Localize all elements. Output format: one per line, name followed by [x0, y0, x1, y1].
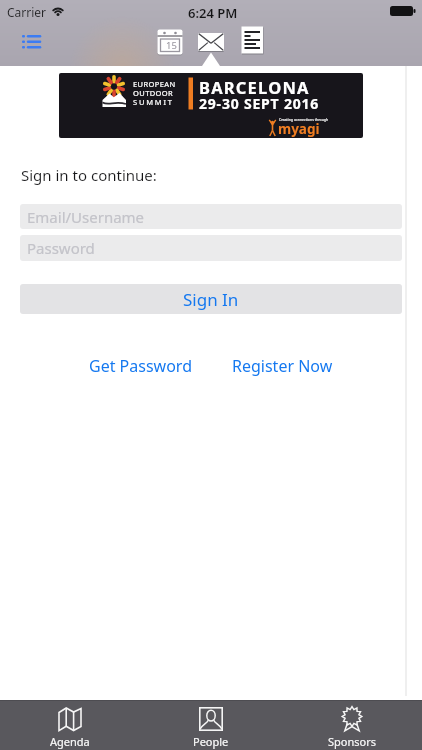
staticText: Sign In — [183, 288, 239, 311]
staticText: People — [193, 734, 229, 749]
staticText: OUTDOOR — [133, 88, 174, 98]
button[interactable]: Agenda — [0, 700, 140, 750]
staticText: Email/Username — [27, 207, 145, 227]
staticText: 15 — [166, 39, 177, 52]
staticText: 6:24 PM — [188, 4, 238, 22]
staticText: Sign in to continue: — [21, 165, 157, 185]
button[interactable]: Password — [20, 235, 402, 261]
staticText: Get Password — [89, 355, 192, 377]
button[interactable]: People — [140, 700, 281, 750]
button[interactable] — [241, 26, 264, 55]
staticText: Creating connections through — [279, 117, 329, 122]
button[interactable]: Sponsors — [281, 700, 422, 750]
staticText: Agenda — [50, 734, 90, 749]
staticText: SUMMIT — [133, 97, 174, 107]
staticText: Register Now — [232, 355, 333, 377]
button[interactable]: Register Now — [222, 355, 342, 377]
staticText: Sponsors — [328, 734, 376, 749]
button[interactable]: EUROPEAN — [59, 73, 363, 138]
button[interactable]: Sign In — [20, 284, 402, 314]
staticText: myagi — [278, 120, 320, 138]
staticText: Carrier — [7, 4, 47, 20]
staticText: Password — [27, 238, 95, 258]
staticText: 29-30 SEPT 2016 — [199, 94, 320, 113]
button[interactable]: Get Password — [80, 355, 200, 377]
button[interactable]: Email/Username — [20, 204, 402, 229]
button[interactable] — [17, 30, 45, 52]
staticText: EUROPEAN — [133, 79, 176, 89]
button[interactable] — [198, 33, 224, 51]
staticText: BARCELONA — [199, 76, 310, 98]
button[interactable]: 15 — [157, 29, 183, 55]
